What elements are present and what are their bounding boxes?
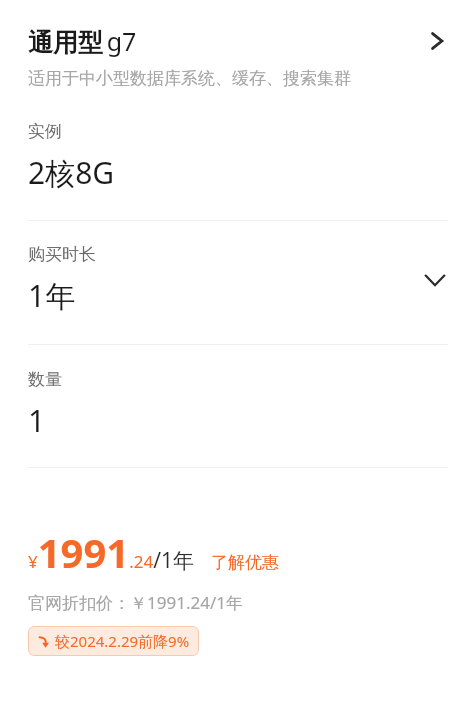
staticText: 购买时长 — [28, 244, 96, 265]
staticText: 了解优惠 — [211, 552, 279, 573]
staticText: 1年 — [28, 275, 76, 316]
staticText: 实例 — [28, 121, 62, 142]
staticText: ¥1991.24/1年 — [28, 525, 195, 579]
staticText: 1 — [28, 400, 46, 441]
staticText: 官网折扣价：￥1991.24/1年 — [28, 591, 243, 614]
button[interactable]: 通用型 g7 — [0, 24, 476, 58]
staticText: 适用于中小型数据库系统、缓存、搜索集群 — [28, 68, 351, 89]
button[interactable]: 了解优惠 — [211, 552, 279, 579]
staticText: 数量 — [28, 369, 62, 390]
button[interactable]: 较2024.2.29前降9% — [28, 626, 199, 656]
other: 展开购买时长选项 — [422, 267, 448, 293]
staticText: 较2024.2.29前降9% — [55, 631, 190, 651]
staticText: 2核8G — [28, 152, 115, 193]
staticText: 通用型 g7 — [28, 24, 426, 58]
button[interactable]: 购买时长 — [0, 244, 476, 316]
other: 查看规格详情 — [426, 30, 448, 52]
button[interactable]: 实例 — [0, 121, 476, 193]
button[interactable]: 数量 — [0, 369, 476, 441]
